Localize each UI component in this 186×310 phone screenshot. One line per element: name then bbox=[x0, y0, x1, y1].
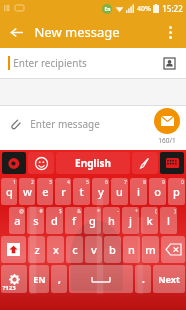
button[interactable]: e bbox=[37, 178, 53, 205]
button[interactable]: Space bbox=[69, 265, 133, 293]
button[interactable]: Back bbox=[0, 16, 32, 48]
button[interactable]: u bbox=[111, 178, 128, 205]
button[interactable]: k bbox=[141, 207, 158, 234]
staticText: 5 bbox=[86, 179, 89, 186]
button[interactable]: Backspace bbox=[161, 236, 185, 263]
staticText: k bbox=[146, 213, 153, 228]
button[interactable]: w bbox=[19, 178, 35, 205]
button[interactable]: Enter recipients bbox=[0, 48, 186, 78]
button[interactable]: l bbox=[160, 207, 177, 234]
button[interactable]: q bbox=[1, 178, 17, 205]
button[interactable]: x bbox=[47, 236, 64, 263]
button[interactable]: Symbols and settings bbox=[1, 265, 27, 293]
button[interactable]: Emoji bbox=[28, 152, 54, 174]
staticText: - bbox=[117, 208, 119, 215]
button[interactable]: g bbox=[84, 207, 101, 234]
staticText: e bbox=[42, 184, 49, 199]
staticText: t bbox=[79, 184, 84, 199]
button[interactable]: Add contact bbox=[156, 50, 182, 76]
staticText: s bbox=[33, 213, 39, 228]
staticText: 0 bbox=[181, 179, 184, 186]
staticText: 1 bbox=[13, 179, 16, 186]
button[interactable]: Handwriting bbox=[132, 152, 158, 174]
button[interactable]: n bbox=[123, 236, 140, 263]
staticText: h bbox=[108, 213, 115, 228]
staticText: f bbox=[72, 213, 76, 228]
staticText: r bbox=[61, 184, 66, 199]
staticText: g bbox=[89, 213, 96, 228]
button[interactable]: j bbox=[122, 207, 139, 234]
staticText: l bbox=[167, 213, 170, 228]
staticText: 160/1 bbox=[158, 136, 176, 145]
button[interactable]: y bbox=[92, 178, 109, 205]
staticText: $ bbox=[59, 208, 62, 215]
staticText: En bbox=[104, 6, 111, 13]
staticText: EN bbox=[33, 273, 46, 285]
button[interactable]: Keyboard settings bbox=[160, 152, 184, 174]
staticText: Next bbox=[158, 273, 180, 285]
staticText: * bbox=[97, 208, 100, 215]
button[interactable]: Attach bbox=[0, 106, 186, 142]
staticText: . bbox=[142, 272, 145, 286]
button[interactable]: c bbox=[66, 236, 83, 263]
staticText: & bbox=[77, 208, 81, 215]
staticText: Enter message bbox=[30, 117, 100, 131]
staticText: ( bbox=[155, 208, 157, 215]
staticText: v bbox=[91, 242, 97, 257]
staticText: x bbox=[53, 242, 59, 257]
button[interactable]: h bbox=[103, 207, 120, 234]
button[interactable]: m bbox=[142, 236, 159, 263]
staticText: 4 bbox=[67, 179, 70, 186]
button[interactable]: Comma bbox=[51, 265, 67, 293]
staticText: + bbox=[135, 208, 138, 215]
staticText: z bbox=[34, 242, 40, 257]
button[interactable]: i bbox=[130, 178, 147, 205]
staticText: Enter recipients bbox=[13, 56, 87, 70]
staticText: New message bbox=[34, 23, 120, 41]
button[interactable]: v bbox=[85, 236, 102, 263]
staticText: , bbox=[58, 272, 61, 286]
button[interactable]: s bbox=[27, 207, 44, 234]
staticText: ?123 bbox=[2, 284, 16, 292]
staticText: m bbox=[145, 242, 156, 257]
button[interactable]: d bbox=[46, 207, 63, 234]
button[interactable]: t bbox=[73, 178, 90, 205]
staticText: 6 bbox=[105, 179, 108, 186]
staticText: j bbox=[129, 213, 132, 228]
staticText: 7 bbox=[124, 179, 127, 186]
staticText: d bbox=[51, 213, 58, 228]
staticText: i bbox=[137, 184, 140, 199]
button[interactable]: Attach bbox=[0, 109, 30, 139]
button[interactable]: Next bbox=[153, 265, 185, 293]
button[interactable]: z bbox=[28, 236, 45, 263]
staticText: English bbox=[75, 156, 111, 170]
button[interactable]: r bbox=[55, 178, 71, 205]
button[interactable]: Period bbox=[135, 265, 151, 293]
button[interactable]: a bbox=[9, 207, 25, 234]
button[interactable]: f bbox=[65, 207, 82, 234]
staticText: c bbox=[72, 242, 78, 257]
staticText: p bbox=[173, 184, 180, 199]
button[interactable]: Shift bbox=[1, 236, 26, 263]
button[interactable]: Send bbox=[154, 108, 180, 134]
staticText: q bbox=[6, 184, 13, 199]
staticText: w bbox=[23, 184, 32, 199]
staticText: 15:22 bbox=[162, 3, 183, 14]
staticText: # bbox=[39, 208, 43, 215]
staticText: b bbox=[109, 242, 116, 257]
staticText: 8 bbox=[143, 179, 146, 186]
button[interactable]: o bbox=[149, 178, 166, 205]
button[interactable]: EN bbox=[29, 265, 49, 293]
staticText: o bbox=[154, 184, 161, 199]
button[interactable]: b bbox=[104, 236, 121, 263]
button[interactable]: More options bbox=[154, 16, 186, 48]
staticText: a bbox=[14, 213, 21, 228]
button[interactable]: p bbox=[168, 178, 185, 205]
staticText: ) bbox=[174, 208, 176, 215]
staticText: n bbox=[128, 242, 135, 257]
staticText: @ bbox=[19, 208, 24, 215]
button[interactable]: Voice input bbox=[2, 152, 26, 174]
staticText: u bbox=[116, 184, 123, 199]
staticText: 2 bbox=[31, 179, 34, 186]
button[interactable]: English bbox=[56, 152, 130, 174]
